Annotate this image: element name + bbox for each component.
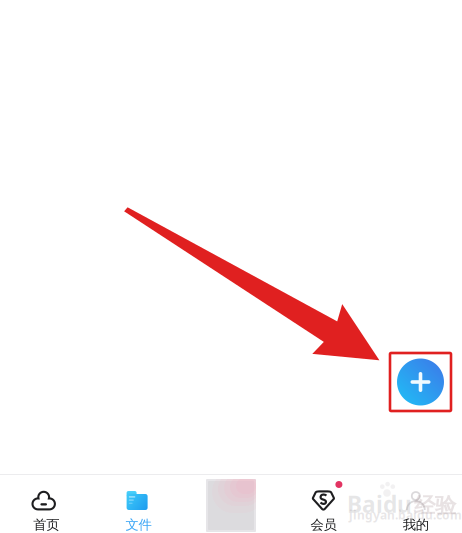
staticText: 会员 xyxy=(310,517,336,533)
staticText: Baidu xyxy=(347,489,412,519)
button[interactable]: 我的 xyxy=(370,475,462,533)
staticText: jingyan.baidu.com xyxy=(349,507,462,523)
staticText: 经验 xyxy=(414,493,456,519)
button[interactable]: 会员 xyxy=(277,475,370,533)
button[interactable]: Create xyxy=(390,353,451,411)
button[interactable]: 文件 xyxy=(92,475,185,533)
staticText: 首页 xyxy=(33,517,59,533)
button[interactable]: Transfer xyxy=(185,475,277,533)
button[interactable]: 首页 xyxy=(0,475,92,533)
staticText: 我的 xyxy=(403,517,429,533)
staticText: 文件 xyxy=(126,517,152,533)
